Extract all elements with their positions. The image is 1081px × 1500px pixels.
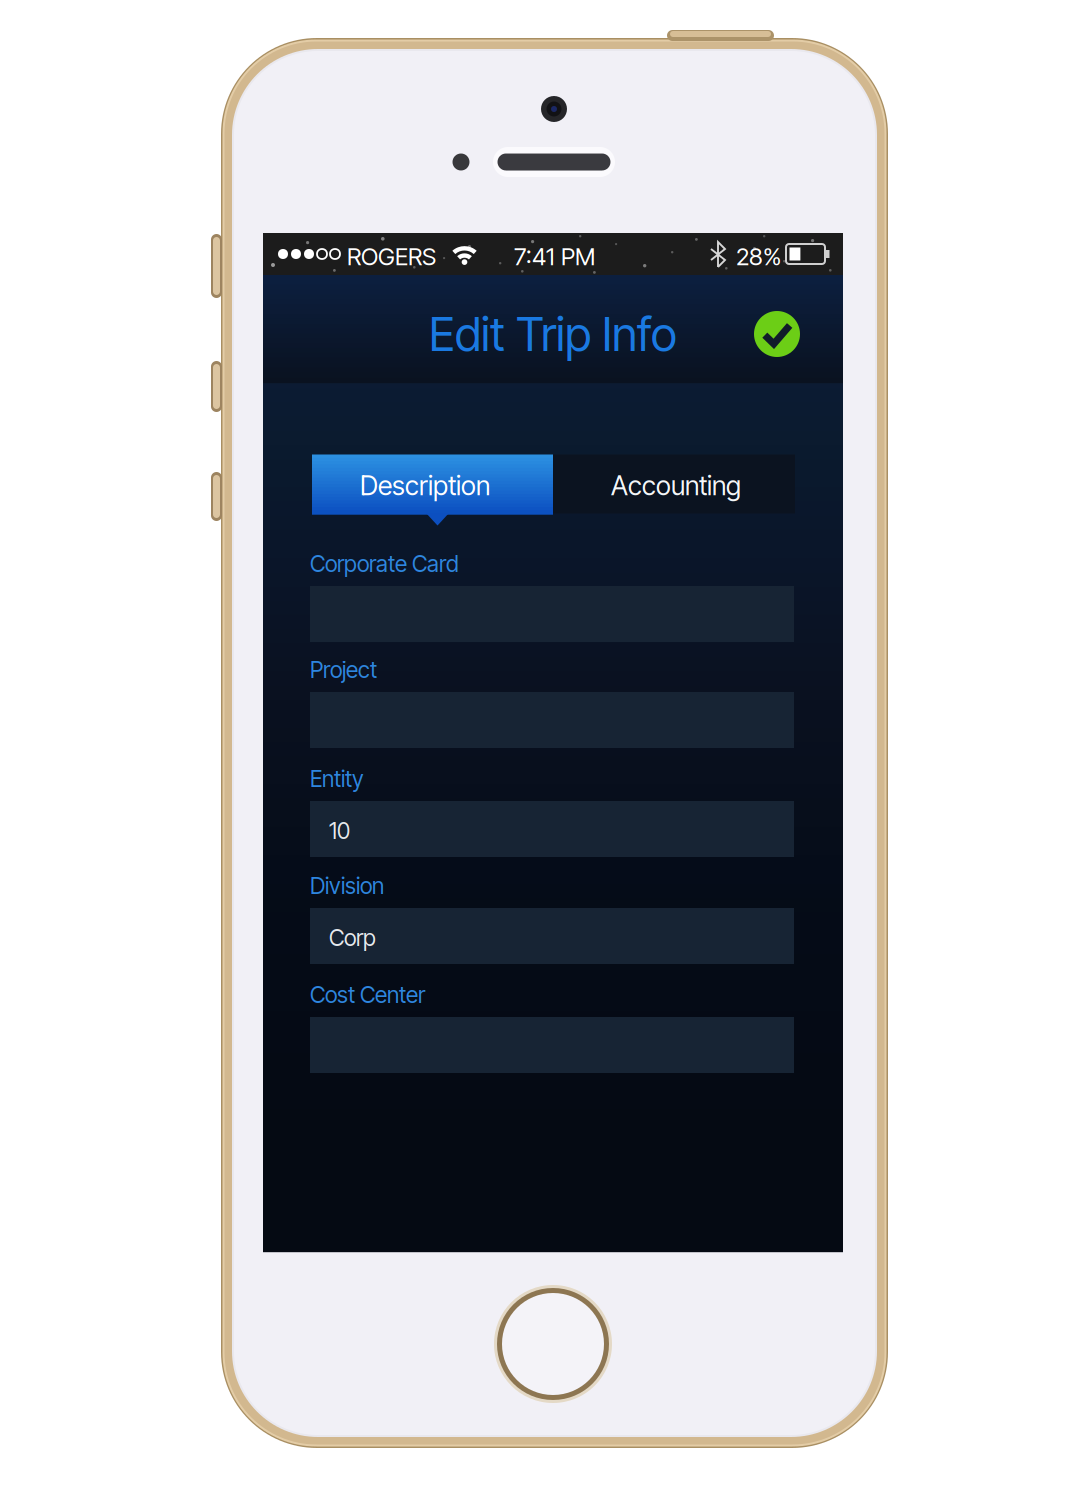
staticText: Accounting [611, 469, 741, 502]
button[interactable]: Description [312, 454, 553, 526]
staticText: Cost Center [310, 981, 425, 1008]
staticText: Description [360, 469, 490, 502]
staticText: Corporate Card [310, 550, 459, 577]
staticText: Project [310, 656, 377, 683]
staticText: ROGERS [347, 242, 436, 271]
button[interactable]: Save [754, 311, 800, 357]
staticText: Corp [329, 924, 376, 951]
staticText: 7:41 PM [514, 242, 595, 271]
staticText: 28% [736, 242, 781, 271]
button[interactable]: Corp [310, 908, 794, 964]
staticText: 10 [329, 817, 350, 844]
staticText: Entity [310, 765, 364, 792]
button[interactable]: 10 [310, 801, 794, 857]
staticText: Division [310, 872, 384, 899]
staticText: Edit Trip Info [429, 306, 677, 362]
button[interactable]: Accounting [553, 454, 795, 513]
